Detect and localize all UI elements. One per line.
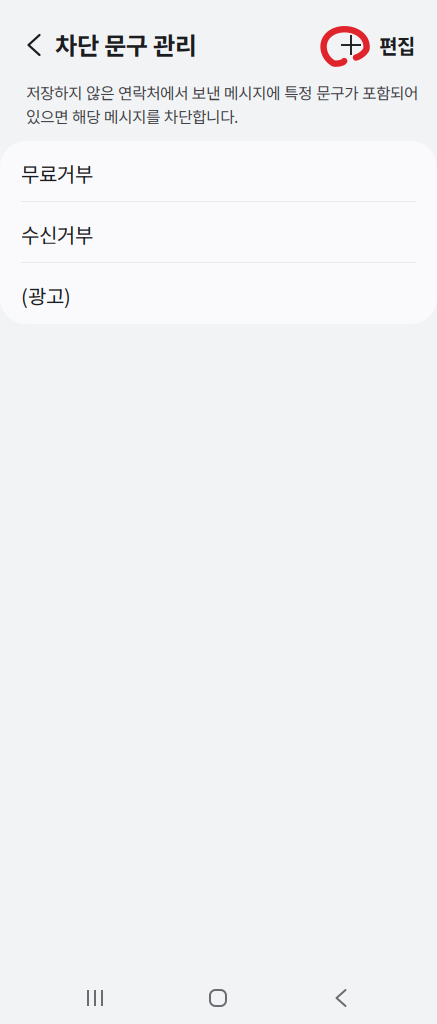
staticText: 무료거부	[21, 158, 93, 187]
staticText: 편집	[379, 30, 415, 59]
button[interactable]: Recents	[63, 975, 127, 1021]
button[interactable]: Home	[186, 975, 250, 1021]
button[interactable]: (광고)	[0, 263, 437, 324]
button[interactable]: Back	[10, 21, 58, 69]
staticText: 차단 문구 관리	[55, 27, 197, 62]
button[interactable]: Back	[309, 975, 373, 1021]
staticText: 있으면 해당 메시지를 차단합니다.	[26, 105, 238, 128]
staticText: (광고)	[21, 281, 71, 310]
button[interactable]: 수신거부	[0, 202, 437, 262]
staticText: 저장하지 않은 연락처에서 보낸 메시지에 특정 문구가 포함되어	[26, 81, 418, 104]
staticText: 수신거부	[21, 219, 93, 248]
button[interactable]: 편집	[325, 21, 421, 69]
button[interactable]: 무료거부	[0, 141, 437, 201]
